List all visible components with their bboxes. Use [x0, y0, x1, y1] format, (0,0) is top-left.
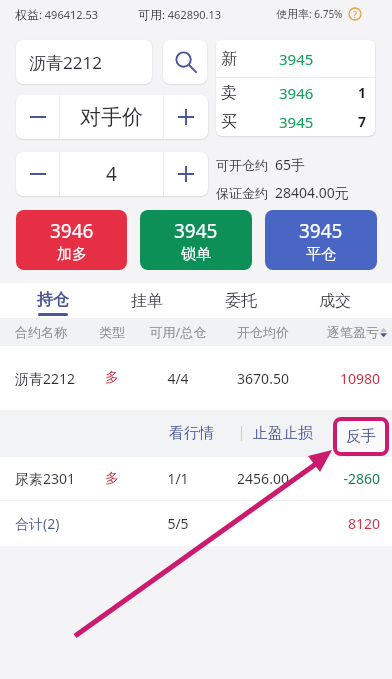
button[interactable]: 持仓: [5, 283, 100, 318]
button[interactable]: 止盈止损: [242, 415, 324, 452]
staticText: 挂单: [131, 291, 163, 311]
staticText: 委托: [225, 291, 257, 311]
button[interactable]: 搜索: [163, 40, 207, 84]
staticText: 1: [358, 83, 367, 102]
staticText: 5/5: [129, 514, 227, 533]
staticText: 看行情: [169, 424, 214, 443]
staticText: 加多: [57, 245, 87, 264]
staticText: ?: [353, 8, 357, 20]
staticText: 保证金约: [216, 185, 268, 201]
button[interactable]: 3945: [140, 210, 252, 270]
staticText: 权益: [15, 7, 39, 22]
staticText: 3946: [279, 83, 314, 103]
staticText: : 496412.53: [39, 7, 99, 22]
button[interactable]: 3945: [265, 210, 377, 270]
staticText: 多: [95, 369, 129, 387]
staticText: 可用: [138, 7, 162, 22]
staticText: 逐笔盈亏: [327, 324, 379, 340]
button[interactable]: 卖: [216, 78, 375, 107]
button[interactable]: 沥青2212: [0, 346, 392, 410]
staticText: 3945: [279, 49, 314, 69]
staticText: 7: [358, 112, 367, 131]
staticText: 3670.50: [227, 369, 299, 388]
staticText: 锁单: [181, 245, 211, 264]
button[interactable]: 帮助: [348, 7, 362, 21]
staticText: 开仓均价: [227, 324, 299, 340]
button[interactable]: 减: [16, 152, 59, 196]
staticText: 成交: [319, 291, 351, 311]
staticText: 使用率: [276, 7, 309, 21]
button[interactable]: 新: [216, 40, 375, 77]
staticText: 3945: [174, 218, 218, 244]
button[interactable]: 买: [216, 107, 375, 136]
staticText: 买: [221, 112, 237, 132]
button[interactable]: 反手: [337, 421, 385, 452]
button[interactable]: 加: [164, 95, 208, 139]
staticText: 1/1: [129, 469, 227, 488]
staticText: 65手: [275, 155, 306, 174]
staticText: : 462890.13: [162, 7, 222, 22]
button[interactable]: 减: [16, 95, 59, 139]
staticText: 沥青2212: [29, 51, 102, 74]
button[interactable]: 看行情: [159, 415, 241, 452]
staticText: 新: [221, 49, 237, 69]
button[interactable]: 委托: [194, 283, 288, 318]
staticText: 持仓: [37, 290, 69, 310]
staticText: 3945: [279, 112, 314, 132]
staticText: 反手: [346, 427, 376, 446]
staticText: 8120: [299, 514, 380, 533]
staticText: -2860: [299, 469, 380, 488]
button[interactable]: 挂单: [100, 283, 194, 318]
staticText: 尿素2301: [15, 469, 95, 488]
button[interactable]: 3946: [16, 210, 127, 270]
staticText: 可开仓约: [216, 157, 268, 173]
staticText: 3946: [50, 218, 94, 244]
staticText: 对手价: [80, 104, 143, 130]
staticText: 合约名称: [15, 324, 95, 340]
staticText: 4/4: [129, 369, 227, 388]
staticText: 3945: [299, 218, 343, 244]
staticText: 类型: [95, 324, 129, 340]
button[interactable]: 4: [60, 152, 163, 196]
staticText: 4: [106, 161, 117, 187]
staticText: 卖: [221, 83, 237, 103]
staticText: 止盈止损: [253, 424, 313, 443]
button[interactable]: 加: [164, 152, 208, 196]
button[interactable]: 合计(2): [0, 501, 392, 546]
button[interactable]: 成交: [288, 283, 382, 318]
staticText: 可用/总仓: [129, 323, 227, 341]
staticText: 平仓: [306, 245, 336, 264]
staticText: 2456.00: [227, 469, 299, 488]
staticText: 10980: [299, 369, 380, 388]
staticText: 多: [95, 470, 129, 488]
staticText: 28404.00元: [275, 183, 349, 202]
staticText: 合计(2): [15, 514, 95, 533]
button[interactable]: 沥青2212: [16, 40, 152, 84]
button[interactable]: 尿素2301: [0, 457, 392, 500]
button[interactable]: 对手价: [60, 95, 163, 139]
staticText: : 6.75%: [309, 7, 343, 21]
staticText: 沥青2212: [15, 369, 95, 388]
